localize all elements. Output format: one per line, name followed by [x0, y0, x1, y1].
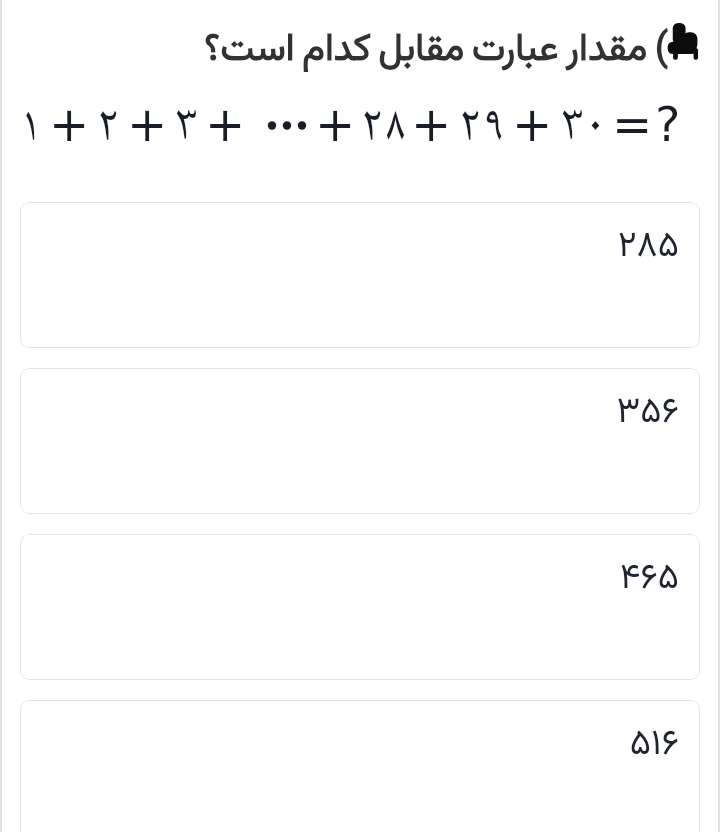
staticText: +	[315, 96, 356, 152]
staticText: ۵۱۶	[40, 717, 679, 773]
staticText: +	[49, 96, 90, 152]
button[interactable]: ۳۵۶	[20, 368, 700, 514]
staticText: ۳	[175, 102, 198, 148]
staticText: ?	[655, 96, 681, 152]
button[interactable]: ۲۸۵	[20, 202, 700, 348]
staticText: ۳۰	[561, 102, 607, 148]
staticText: ۲۹	[459, 102, 505, 148]
staticText: ۲	[97, 102, 120, 148]
staticText: ۴۶۵	[40, 551, 679, 607]
button[interactable]: ۵۱۶	[20, 700, 700, 832]
staticText: ) مقدار عبارت مقابل کدام است؟	[0, 21, 668, 80]
staticText: =	[612, 96, 653, 152]
staticText: +	[205, 96, 246, 152]
staticText: +	[512, 96, 553, 152]
staticText: +	[411, 96, 452, 152]
staticText: ۱	[19, 102, 42, 148]
button[interactable]: ۴۶۵	[20, 534, 700, 680]
staticText: ۲۸	[361, 102, 407, 148]
staticText: +	[127, 96, 168, 152]
other: Question 4	[667, 23, 699, 59]
staticText: ۳۵۶	[40, 385, 679, 441]
staticText: ۲۸۵	[40, 219, 679, 275]
